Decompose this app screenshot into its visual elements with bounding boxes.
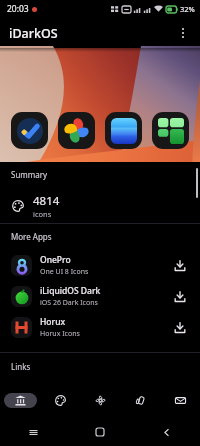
staticText: Links: [11, 361, 31, 372]
button[interactable]: iLiquidOS Dark: [0, 281, 200, 312]
button[interactable]: Contact: [160, 382, 200, 418]
staticText: iDarkOS: [9, 25, 58, 42]
button[interactable]: Download Horux: [169, 317, 191, 339]
button[interactable]: Widgets: [80, 382, 120, 418]
staticText: Horux Icons: [40, 329, 80, 339]
staticText: More Apps: [11, 231, 52, 242]
staticText: Summary: [11, 169, 48, 180]
button[interactable]: Back: [133, 418, 200, 446]
button[interactable]: Home: [66, 418, 133, 446]
button[interactable]: More options: [171, 21, 195, 45]
button[interactable]: 4814: [0, 182, 200, 221]
staticText: icons: [33, 209, 52, 219]
button[interactable]: OnePro: [0, 250, 200, 281]
staticText: 4814: [33, 193, 60, 209]
button[interactable]: App preview 1: [11, 112, 48, 149]
button[interactable]: Horux: [0, 312, 200, 343]
staticText: One UI 8 Icons: [40, 267, 89, 277]
button[interactable]: App preview 3: [105, 112, 142, 149]
staticText: Horux: [40, 316, 66, 328]
button[interactable]: Download OnePro: [169, 255, 191, 277]
button[interactable]: Wallpapers: [120, 382, 160, 418]
button[interactable]: Icons: [40, 382, 80, 418]
staticText: 32%: [180, 4, 195, 14]
staticText: 20:03: [7, 3, 29, 15]
button[interactable]: Download iLiquidOS Dark: [169, 286, 191, 308]
button[interactable]: App preview 4: [152, 112, 189, 149]
staticText: iOS 26 Dark Icons: [40, 298, 98, 308]
button[interactable]: Home: [0, 382, 40, 418]
staticText: iLiquidOS Dark: [40, 285, 101, 297]
button[interactable]: App preview 2: [58, 112, 95, 149]
button[interactable]: Recent apps: [0, 418, 66, 446]
staticText: OnePro: [40, 254, 71, 266]
